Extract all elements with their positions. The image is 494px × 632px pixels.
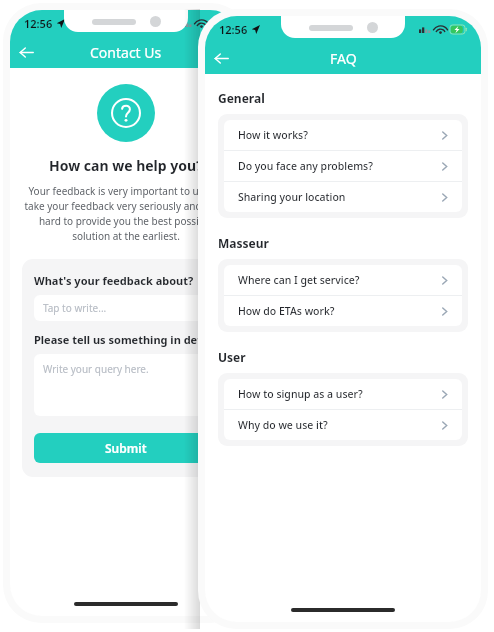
button[interactable]: Tap to write... [34,295,218,321]
staticText: Why do we use it? [238,418,328,432]
button[interactable]: Why do we use it? [224,410,462,440]
staticText: 12:56 [219,22,248,37]
button[interactable]: Submit [34,433,218,463]
staticText: How to signup as a user? [238,387,363,401]
staticText: FAQ [330,49,357,68]
staticText: Contact Us [90,43,162,62]
button[interactable]: Sharing your location [224,182,462,212]
button[interactable]: How to signup as a user? [224,379,462,409]
staticText: Masseur [218,235,269,251]
staticText: User [218,349,246,365]
staticText: How do ETAs work? [238,304,335,318]
staticText: Do you face any problems? [238,159,373,173]
button[interactable]: How it works? [224,120,462,150]
staticText: Tap to write... [43,301,107,315]
staticText: General [218,90,265,106]
button[interactable]: Where can I get service? [224,265,462,295]
staticText: 12:56 [24,16,53,31]
staticText: Please tell us something in detail [34,332,216,347]
button[interactable]: Back [10,36,42,68]
staticText: How it works? [238,128,308,142]
staticText: Submit [105,440,147,456]
staticText: How can we help you? [49,156,203,175]
button[interactable]: Back [205,42,237,74]
staticText: Your feedback is very important to us. W… [24,184,228,243]
staticText: What's your feedback about? [34,273,194,288]
staticText: Write your query here. [43,362,149,376]
button[interactable]: Write your query here. [34,354,218,416]
button[interactable]: How do ETAs work? [224,296,462,326]
staticText: Sharing your location [238,190,346,204]
staticText: Where can I get service? [238,273,360,287]
button[interactable]: Do you face any problems? [224,151,462,181]
